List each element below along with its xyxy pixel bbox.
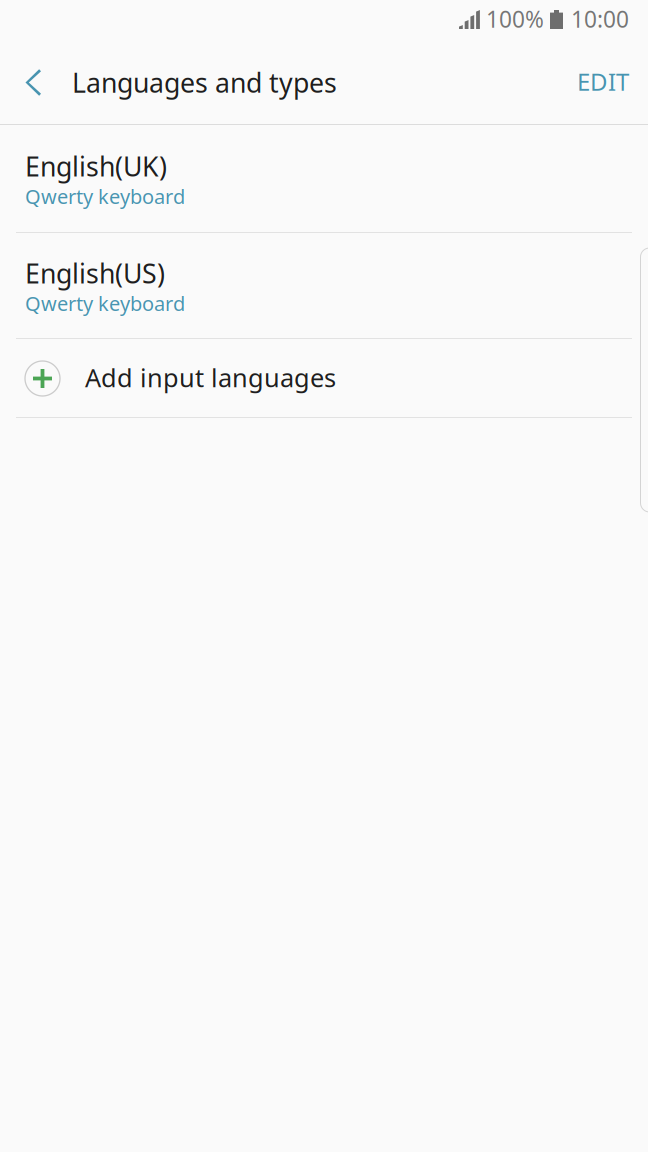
staticText: English(UK) (25, 148, 167, 184)
staticText: 10:00 (571, 4, 629, 34)
staticText: 100% (486, 4, 544, 34)
button[interactable]: Back (0, 38, 57, 124)
staticText: Qwerty keyboard (25, 290, 185, 316)
staticText: Languages and types (72, 65, 337, 100)
staticText: Qwerty keyboard (25, 183, 185, 209)
staticText: Add input languages (85, 361, 336, 394)
staticText: English(US) (25, 255, 165, 291)
button[interactable]: English(UK) (0, 125, 648, 232)
button[interactable]: English(US) (0, 233, 648, 338)
staticText: EDIT (577, 66, 629, 97)
button[interactable]: Add input languages (0, 339, 648, 417)
button[interactable]: EDIT (553, 38, 648, 124)
